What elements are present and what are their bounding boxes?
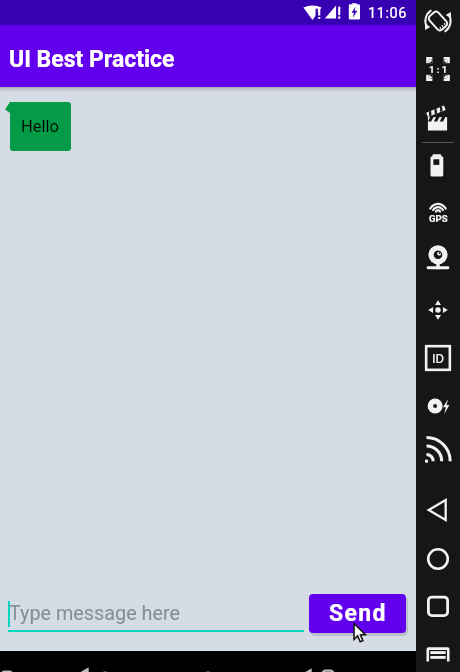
button[interactable]: Rotate [416,0,460,42]
button[interactable]: Type message here [8,593,304,633]
button[interactable]: Hello [5,102,71,151]
staticText: UI Best Practice [9,46,175,73]
button[interactable]: GPS location [416,189,460,231]
button[interactable]: Overview [319,667,337,672]
button[interactable]: Snapshots [416,385,460,427]
button[interactable]: Back [416,489,460,531]
button[interactable]: Zoom 1:1 [416,48,460,90]
button[interactable]: Recents [0,668,16,672]
button[interactable]: Phone ID [416,337,460,379]
button[interactable]: Back [298,665,316,672]
staticText: 11:06 [368,5,407,22]
button[interactable]: D-pad [416,289,460,331]
staticText: Type message here [9,602,181,625]
button[interactable]: Overview [416,585,460,627]
staticText: GPS [429,213,448,224]
button[interactable]: Menu [416,634,460,672]
button[interactable]: Battery [416,145,460,187]
button[interactable]: Record screen [416,98,460,140]
button[interactable]: Recents [0,651,416,672]
button[interactable]: UI Best Practice [0,25,416,87]
button[interactable]: Back [75,664,93,672]
button[interactable]: Home [199,669,217,672]
button[interactable]: Cellular [416,428,460,470]
staticText: Hello [21,117,59,136]
button[interactable]: Home [416,538,460,580]
staticText: 1 : 1 [429,64,448,75]
button[interactable]: Camera [416,236,460,278]
button[interactable]: Home [96,669,114,672]
staticText: ID [432,351,445,366]
staticText: Send [329,600,387,627]
button[interactable]: Send [309,594,406,633]
